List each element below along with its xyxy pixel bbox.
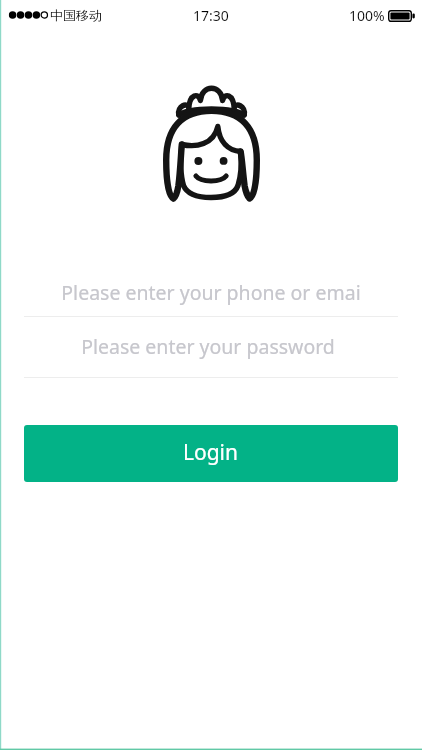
staticText: Please enter your phone or emai — [61, 279, 361, 306]
button[interactable]: Please enter your phone or emai — [0, 256, 422, 316]
button[interactable]: Login — [24, 425, 398, 482]
staticText: Please enter your password — [81, 333, 335, 360]
staticText: 100% — [349, 6, 385, 25]
button[interactable]: Please enter your password — [0, 317, 422, 377]
staticText: 中国移动 — [50, 7, 102, 23]
staticText: Login — [183, 438, 239, 467]
staticText: 17:30 — [193, 6, 229, 25]
